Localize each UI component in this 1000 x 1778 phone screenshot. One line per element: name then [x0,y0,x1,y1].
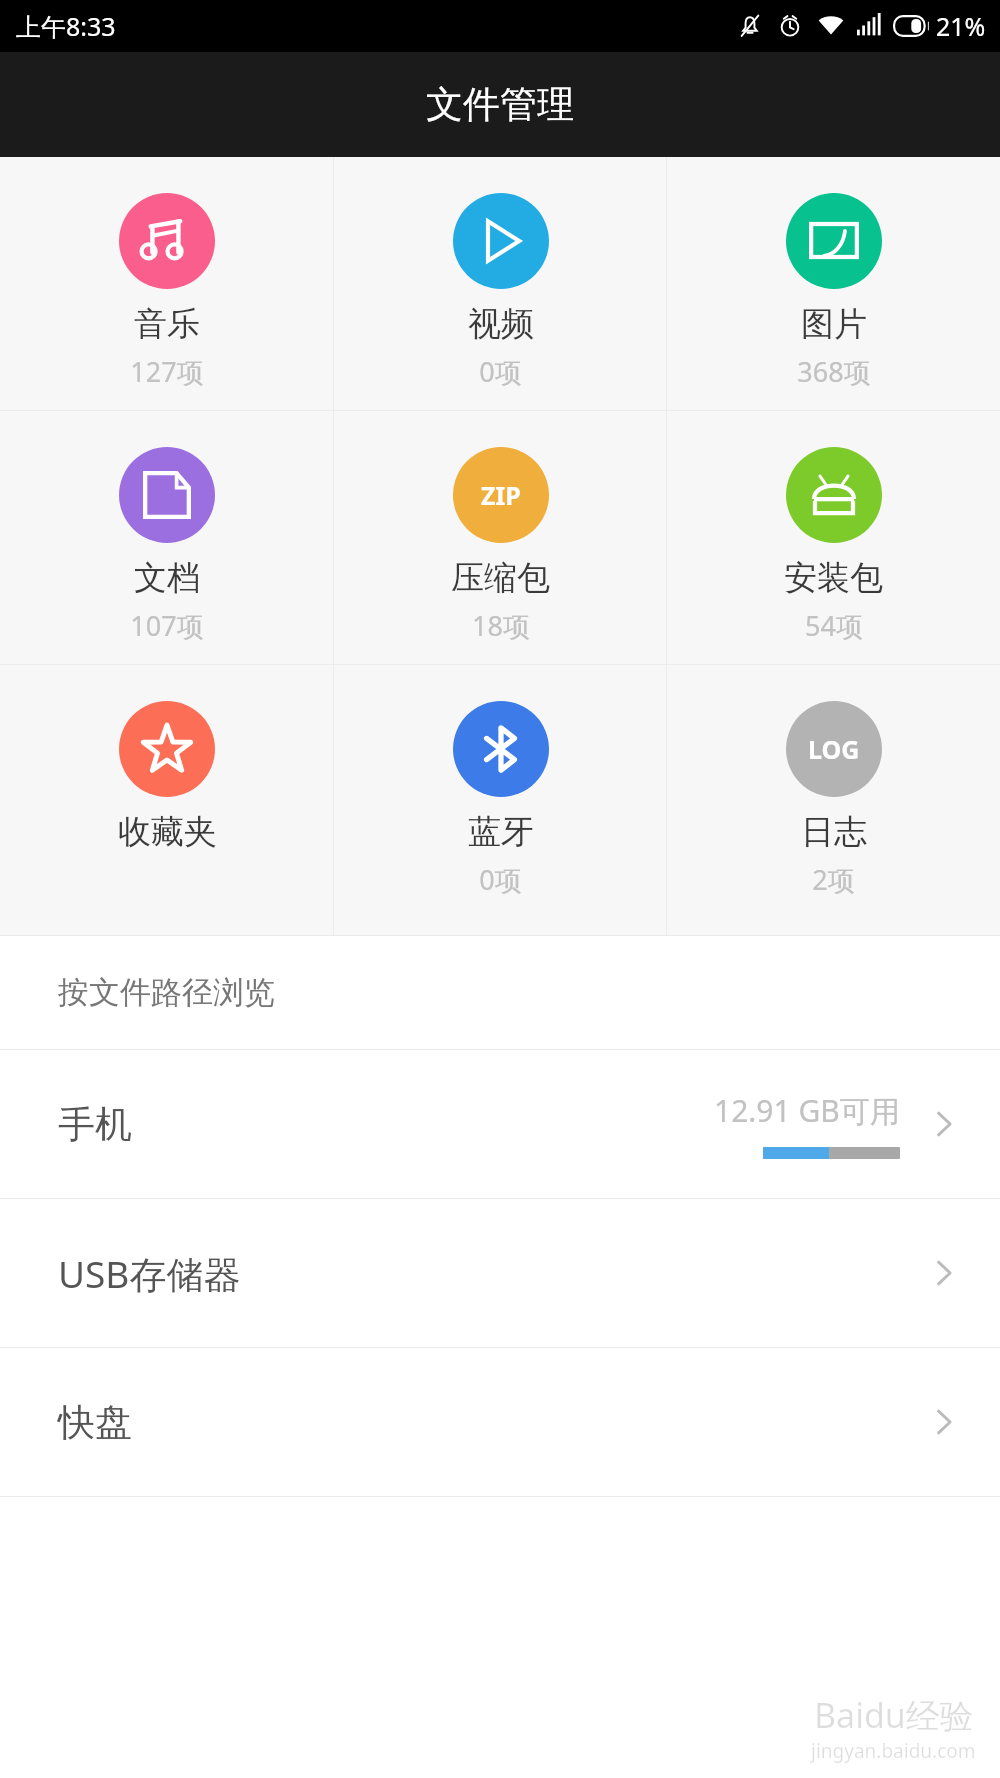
staticText: 18项 [472,607,530,644]
staticText: USB存储器 [58,1248,241,1299]
staticText: 上午8:33 [16,9,116,43]
staticText: 文档 [134,557,200,599]
staticText: 12.91 GB可用 [714,1090,900,1131]
staticText: 压缩包 [451,557,550,599]
staticText: 视频 [468,303,534,345]
staticText: jingyan.baidu.com [811,1738,976,1764]
button[interactable]: 快盘 [0,1348,1000,1496]
staticText: 图片 [801,303,867,345]
staticText: 快盘 [58,1399,132,1446]
button[interactable]: USB存储器 [0,1199,1000,1347]
button[interactable]: 视频 [334,157,667,410]
button[interactable]: LOG [667,665,1000,935]
staticText: 音乐 [134,303,200,345]
button[interactable]: 手机 [0,1050,1000,1198]
staticText: 21% [936,9,986,43]
button[interactable]: 蓝牙 [334,665,667,935]
button[interactable]: 图片 [667,157,1000,410]
staticText: 54项 [805,607,863,644]
staticText: 368项 [797,353,871,390]
button[interactable]: ZIP [334,411,667,664]
staticText: 安装包 [784,557,883,599]
staticText: 蓝牙 [468,811,534,853]
staticText: 127项 [130,353,204,390]
staticText: Baidu经验 [814,1692,974,1738]
staticText: 107项 [130,607,204,644]
button[interactable]: 收藏夹 [0,665,334,935]
staticText: 收藏夹 [118,811,217,853]
staticText: 文件管理 [426,81,574,128]
staticText: 手机 [58,1101,132,1148]
other: 展开手机存储 [924,1104,964,1144]
staticText: 按文件路径浏览 [58,973,275,1012]
staticText: LOG [808,732,860,766]
staticText: 0项 [479,861,522,898]
staticText: 日志 [801,811,867,853]
staticText: 2项 [812,861,855,898]
button[interactable]: 安装包 [667,411,1000,664]
staticText: 0项 [479,353,522,390]
staticText: ZIP [481,478,521,512]
button[interactable]: 音乐 [0,157,334,410]
button[interactable]: 文档 [0,411,334,664]
